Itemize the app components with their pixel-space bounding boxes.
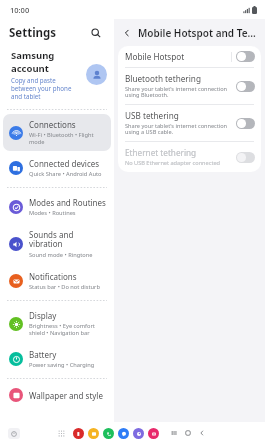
button[interactable]: Display — [3, 305, 111, 342]
button[interactable]: Toggle — [236, 152, 255, 163]
staticText: USB tethering — [125, 110, 179, 121]
staticText: and tablet — [11, 92, 41, 100]
button[interactable]: camera — [148, 428, 159, 439]
staticText: Brightness • Eye comfort shield • Naviga… — [29, 322, 95, 337]
staticText: No USB Ethernet adapter connected — [125, 159, 221, 167]
staticText: Bluetooth tethering — [125, 73, 201, 84]
button[interactable]: Samsung — [0, 46, 114, 106]
button[interactable]: Toggle — [236, 81, 255, 92]
staticText: Battery — [29, 349, 57, 360]
staticText: Display — [29, 310, 57, 321]
staticText: Samsung — [11, 49, 55, 62]
staticText: Ethernet tethering — [125, 147, 197, 158]
staticText: Wi-Fi • Bluetooth • Flight mode — [29, 131, 94, 146]
button[interactable]: Modes and Routines — [3, 192, 111, 222]
button[interactable]: Toggle — [236, 51, 255, 62]
button[interactable]: notes — [88, 428, 99, 439]
button[interactable]: Notifications — [3, 266, 111, 296]
staticText: Power saving • Charging — [29, 361, 95, 369]
staticText: Sound mode • Ringtone — [29, 251, 93, 259]
staticText: 10:00 — [10, 5, 30, 15]
button[interactable]: Wallpaper and style — [3, 383, 111, 407]
button[interactable]: Apps — [56, 428, 67, 439]
staticText: Status bar • Do not disturb — [29, 283, 100, 291]
staticText: Modes and Routines — [29, 197, 106, 208]
button[interactable]: Ethernet tethering — [118, 142, 261, 172]
button[interactable]: Recents — [167, 426, 181, 440]
button[interactable]: Mobile Hotspot — [118, 46, 261, 67]
staticText: Modes • Routines — [29, 209, 76, 217]
staticText: between your phone — [11, 84, 72, 92]
button[interactable]: Search settings — [87, 24, 105, 42]
staticText: Mobile Hotspot and Tether... — [138, 26, 259, 40]
button[interactable]: Back — [119, 25, 135, 41]
button[interactable]: browser — [133, 428, 144, 439]
button[interactable]: Back — [195, 426, 209, 440]
staticText: Share your tablet's internet connection … — [125, 122, 228, 136]
staticText: Settings — [9, 25, 57, 41]
staticText: Connected devices — [29, 158, 100, 169]
button[interactable]: Battery — [3, 344, 111, 374]
staticText: Connections — [29, 119, 76, 130]
staticText: account — [11, 62, 49, 75]
staticText: Wallpaper and style — [29, 390, 103, 401]
staticText: Quick Share • Android Auto — [29, 170, 102, 178]
button[interactable]: Connections — [3, 114, 111, 151]
staticText: Mobile Hotspot — [125, 51, 185, 62]
button[interactable]: phone — [103, 428, 114, 439]
button[interactable]: Recent app — [8, 428, 20, 439]
staticText: Copy and paste — [11, 76, 56, 84]
button[interactable]: Connected devices — [3, 153, 111, 183]
button[interactable]: Sounds and vibration — [3, 224, 111, 264]
button[interactable]: Toggle — [236, 118, 255, 129]
staticText: Share your tablet's internet connection … — [125, 85, 228, 99]
staticText: Notifications — [29, 271, 77, 282]
button[interactable]: messenger — [118, 428, 129, 439]
button[interactable]: flipboard — [73, 428, 84, 439]
button[interactable]: Bluetooth tethering — [118, 68, 261, 104]
button[interactable]: Home — [181, 426, 195, 440]
staticText: Sounds and vibration — [29, 229, 74, 250]
button[interactable]: USB tethering — [118, 105, 261, 141]
